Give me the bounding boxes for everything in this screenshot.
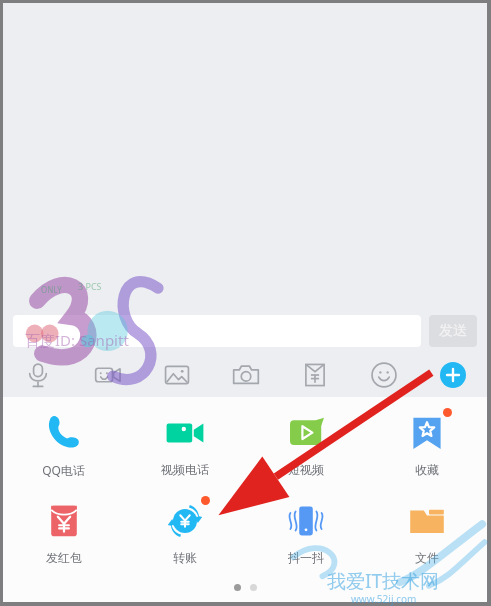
button[interactable]: 发红包 (3, 495, 124, 575)
button[interactable]: More (418, 355, 487, 395)
button[interactable]: 文件 (366, 495, 487, 575)
staticText: 发送 (439, 322, 467, 340)
button[interactable]: 发送 (429, 315, 477, 347)
staticText: 文件 (415, 550, 439, 565)
button[interactable]: Emoji (349, 355, 418, 395)
button[interactable]: 短视频 (245, 407, 366, 487)
staticText: 百度ID: Sanpitt (25, 330, 129, 350)
staticText: 3 PCS (78, 280, 102, 292)
staticText: 转账 (173, 550, 197, 565)
staticText: 我爱IT技术网 (327, 568, 440, 594)
button[interactable]: Voice (3, 355, 73, 395)
staticText: 视频电话 (161, 462, 209, 477)
button[interactable]: 抖一抖 (245, 495, 366, 575)
button[interactable]: Photo (142, 355, 211, 395)
staticText: QQ电话 (42, 462, 85, 478)
staticText: 收藏 (415, 462, 439, 477)
staticText: 发红包 (46, 550, 82, 565)
staticText: ONLY (41, 284, 62, 295)
button[interactable]: Red packet (280, 355, 349, 395)
button[interactable]: 收藏 (366, 407, 487, 487)
button[interactable]: 视频电话 (124, 407, 245, 487)
staticText: 抖一抖 (288, 550, 324, 565)
staticText: 短视频 (288, 462, 324, 477)
button[interactable]: 转账 (124, 495, 245, 575)
button[interactable] (13, 315, 421, 347)
button[interactable]: Video message (73, 355, 142, 395)
button[interactable]: QQ电话 (3, 407, 124, 487)
staticText: www.52ij.com (351, 592, 417, 606)
button[interactable]: Camera (211, 355, 280, 395)
